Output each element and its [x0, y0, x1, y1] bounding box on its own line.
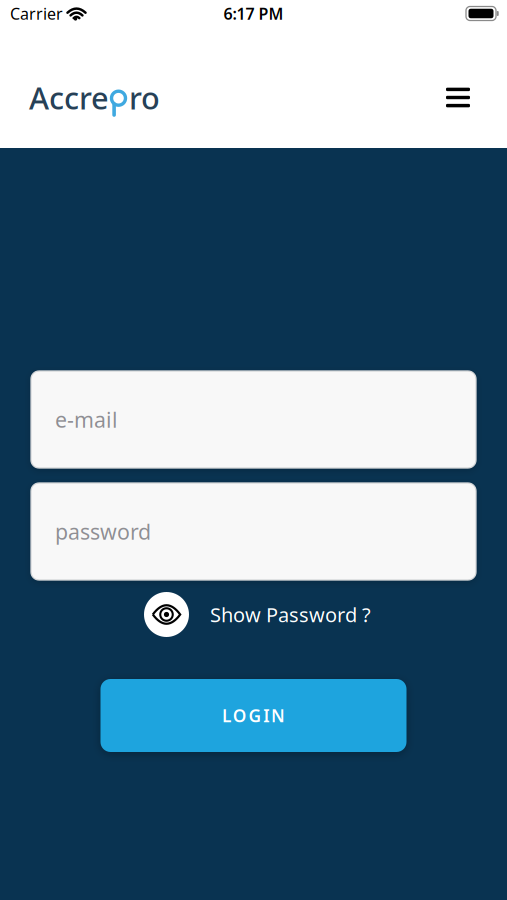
staticText: I [263, 704, 269, 727]
button[interactable]: e-mail [31, 371, 476, 468]
staticText: Show Password ? [210, 601, 371, 628]
staticText: G [248, 704, 261, 727]
button[interactable]: password [31, 483, 476, 580]
staticText: ro [129, 77, 160, 118]
staticText: e-mail [55, 405, 118, 434]
button[interactable]: L [100, 679, 406, 752]
staticText: N [271, 704, 285, 727]
staticText: Accre [29, 77, 109, 118]
staticText: Carrier [10, 3, 63, 24]
staticText: 6:17 PM [223, 3, 283, 24]
staticText: L [222, 704, 231, 727]
button[interactable] [446, 87, 470, 107]
staticText: password [55, 517, 151, 546]
button[interactable]: Show Password ? [140, 592, 367, 637]
staticText: O [233, 704, 247, 727]
